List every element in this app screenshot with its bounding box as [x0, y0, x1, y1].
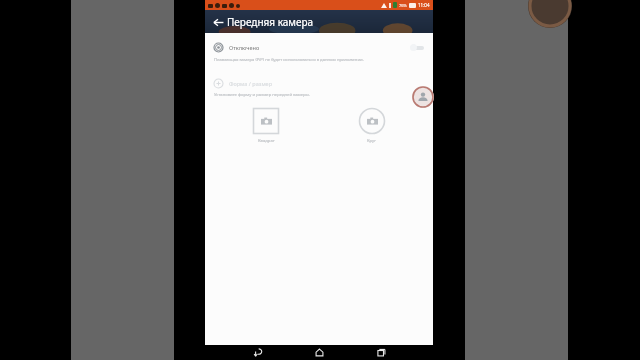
staticText: Установите форму и размер передней камер… — [214, 92, 310, 98]
staticText: 11:04 — [418, 2, 430, 8]
button[interactable]: Переключатель плавающей камеры — [410, 43, 425, 52]
button[interactable]: Квадрат — [244, 107, 288, 144]
button[interactable]: Отключено — [205, 40, 433, 54]
staticText: Форма / размер — [229, 80, 272, 87]
staticText: Отключено — [229, 44, 260, 51]
staticText: Круг — [367, 138, 377, 144]
staticText: Передняя камера — [227, 15, 314, 29]
button[interactable]: Круг — [350, 107, 394, 144]
button[interactable]: Назад — [249, 345, 267, 360]
staticText: Плавающая камера (PiP) не будет использо… — [214, 57, 364, 63]
button[interactable]: Назад — [210, 14, 226, 30]
staticText: Квадрат — [258, 138, 275, 144]
button[interactable]: Обзор — [372, 345, 390, 360]
staticText: 76% — [399, 3, 407, 8]
button[interactable]: Главный экран — [310, 345, 328, 360]
